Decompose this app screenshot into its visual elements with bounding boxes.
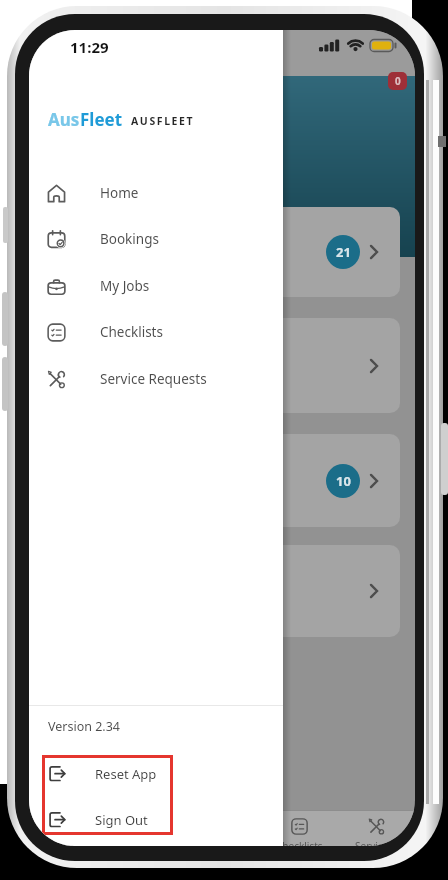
button[interactable]: Reset App bbox=[29, 753, 283, 795]
staticText: Aus bbox=[48, 108, 80, 131]
staticText: Bookings bbox=[100, 230, 159, 248]
button[interactable]: Home bbox=[30, 810, 107, 846]
staticText: 11:29 bbox=[70, 37, 109, 57]
button[interactable] bbox=[45, 318, 400, 413]
button[interactable]: 10 bbox=[45, 434, 400, 527]
button[interactable]: 21 bbox=[45, 207, 400, 297]
button[interactable]: Bookings bbox=[29, 216, 283, 262]
button[interactable]: Sign Out bbox=[29, 799, 283, 841]
button[interactable]: Checklists bbox=[261, 810, 338, 846]
staticText: Reset App bbox=[95, 765, 157, 783]
button[interactable]: Service R bbox=[338, 810, 415, 846]
staticText: Service R bbox=[355, 839, 398, 846]
staticText: Sign Out bbox=[95, 811, 148, 829]
staticText: 10 bbox=[336, 472, 351, 490]
button[interactable] bbox=[45, 545, 400, 637]
staticText: Version 2.34 bbox=[48, 718, 121, 735]
button[interactable]: Checklists bbox=[29, 309, 283, 355]
staticText: Checklists bbox=[276, 839, 323, 846]
staticText: Checklists bbox=[100, 323, 163, 341]
staticText: Fleet bbox=[80, 108, 123, 131]
staticText: Service Requests bbox=[100, 370, 207, 388]
button[interactable]: Service Requests bbox=[29, 356, 283, 402]
button[interactable]: My Jobs bbox=[29, 263, 283, 309]
button[interactable]: Bookings bbox=[107, 810, 184, 846]
staticText: 0 bbox=[395, 74, 401, 88]
staticText: 21 bbox=[336, 243, 351, 261]
staticText: My Jobs bbox=[100, 277, 150, 295]
staticText: AUSFLEET bbox=[131, 114, 195, 128]
button[interactable]: Home bbox=[29, 170, 283, 216]
staticText: Home bbox=[100, 184, 139, 202]
staticText: Home bbox=[54, 839, 83, 846]
